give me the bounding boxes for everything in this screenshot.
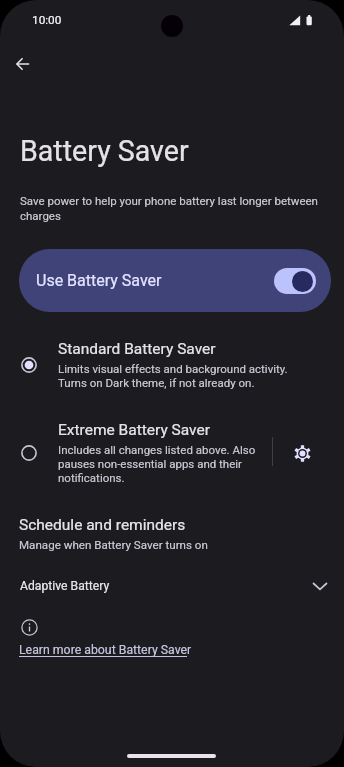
button[interactable]: Use Battery Saver: [19, 249, 331, 312]
button[interactable]: Extreme Battery Saver: [0, 411, 344, 497]
button[interactable]: Back: [6, 47, 39, 80]
staticText: Battery Saver: [20, 134, 189, 168]
staticText: Manage when Battery Saver turns on: [19, 538, 208, 552]
button[interactable]: Extreme Battery Saver settings: [282, 433, 322, 473]
staticText: Extreme Battery Saver: [58, 421, 210, 439]
staticText: 10:00: [32, 13, 62, 27]
staticText: Standard Battery Saver: [58, 340, 216, 358]
staticText: Save power to help your phone battery la…: [20, 194, 318, 223]
button[interactable]: Standard Battery Saver: [0, 330, 344, 402]
button[interactable]: Use Battery Saver toggle: [274, 268, 316, 294]
staticText: Schedule and reminders: [19, 516, 186, 534]
staticText: Use Battery Saver: [36, 271, 162, 290]
staticText: Limits visual effects and background act…: [58, 362, 288, 390]
button[interactable]: Adaptive Battery: [0, 568, 344, 604]
staticText: Adaptive Battery: [20, 579, 110, 593]
button[interactable]: Learn more about Battery Saver: [19, 641, 192, 655]
staticText: Learn more about Battery Saver: [19, 643, 192, 657]
staticText: Includes all changes listed above. Also …: [58, 443, 256, 485]
